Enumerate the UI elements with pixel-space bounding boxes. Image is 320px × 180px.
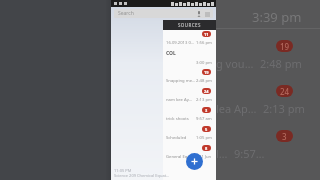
button[interactable]: Search <box>114 9 213 18</box>
staticText: 19 <box>204 70 209 75</box>
staticText: 1:56 pm <box>196 40 212 46</box>
staticText: 2:48 pm <box>196 78 212 84</box>
button[interactable]: 19 <box>163 68 216 87</box>
staticText: l… <box>216 146 228 161</box>
staticText: 5 <box>205 127 208 132</box>
button[interactable]: 3 <box>163 106 216 125</box>
staticText: Search <box>118 10 134 17</box>
button[interactable]: 24 <box>0 85 320 129</box>
staticText: 2:13 pm <box>263 101 305 116</box>
button[interactable]: 3:00 pm <box>163 57 216 68</box>
button[interactable]: 8 <box>163 144 216 163</box>
staticText: 9:57 am <box>196 116 212 122</box>
staticText: 16.09.2013 0… <box>166 40 196 46</box>
staticText: 8 <box>205 146 208 151</box>
staticText: 1:05 pm <box>196 135 212 141</box>
staticText: 24 <box>204 89 209 94</box>
staticText: COL <box>166 50 176 57</box>
staticText: 3 <box>205 108 208 113</box>
staticText: trick shoots <box>166 116 196 122</box>
button[interactable]: 19 <box>0 40 320 84</box>
staticText: 3:39 pm <box>252 8 302 26</box>
staticText: 2:48 pm <box>260 56 302 71</box>
button[interactable]: 24 <box>163 87 216 106</box>
staticText: Science 209 Chemical Equat… <box>114 173 170 178</box>
staticText: lea Ap… <box>216 101 257 116</box>
staticText: 9:57… <box>234 146 265 161</box>
staticText: 24 <box>280 86 290 97</box>
staticText: 3:00 pm <box>196 60 212 66</box>
staticText: General Equal… <box>166 154 199 160</box>
staticText: g vou… <box>216 56 254 71</box>
button[interactable]: 11 <box>163 30 216 49</box>
button[interactable]: 5 <box>163 125 216 144</box>
staticText: 11 <box>204 32 209 37</box>
staticText: Snapping me… <box>166 78 196 84</box>
staticText: 3 <box>282 131 287 142</box>
staticText: SOURCES <box>178 22 201 28</box>
button[interactable]: 3 <box>0 130 320 174</box>
staticText: Scheduled Ap… <box>166 135 196 141</box>
staticText: 11:05 PM <box>114 168 132 173</box>
staticText: 19 <box>280 41 290 52</box>
staticText: 11 Jun <box>199 154 212 160</box>
button[interactable]: Compose <box>186 153 203 170</box>
staticText: 2:13 pm <box>196 97 212 103</box>
staticText: nam kee Ay… <box>166 97 196 103</box>
